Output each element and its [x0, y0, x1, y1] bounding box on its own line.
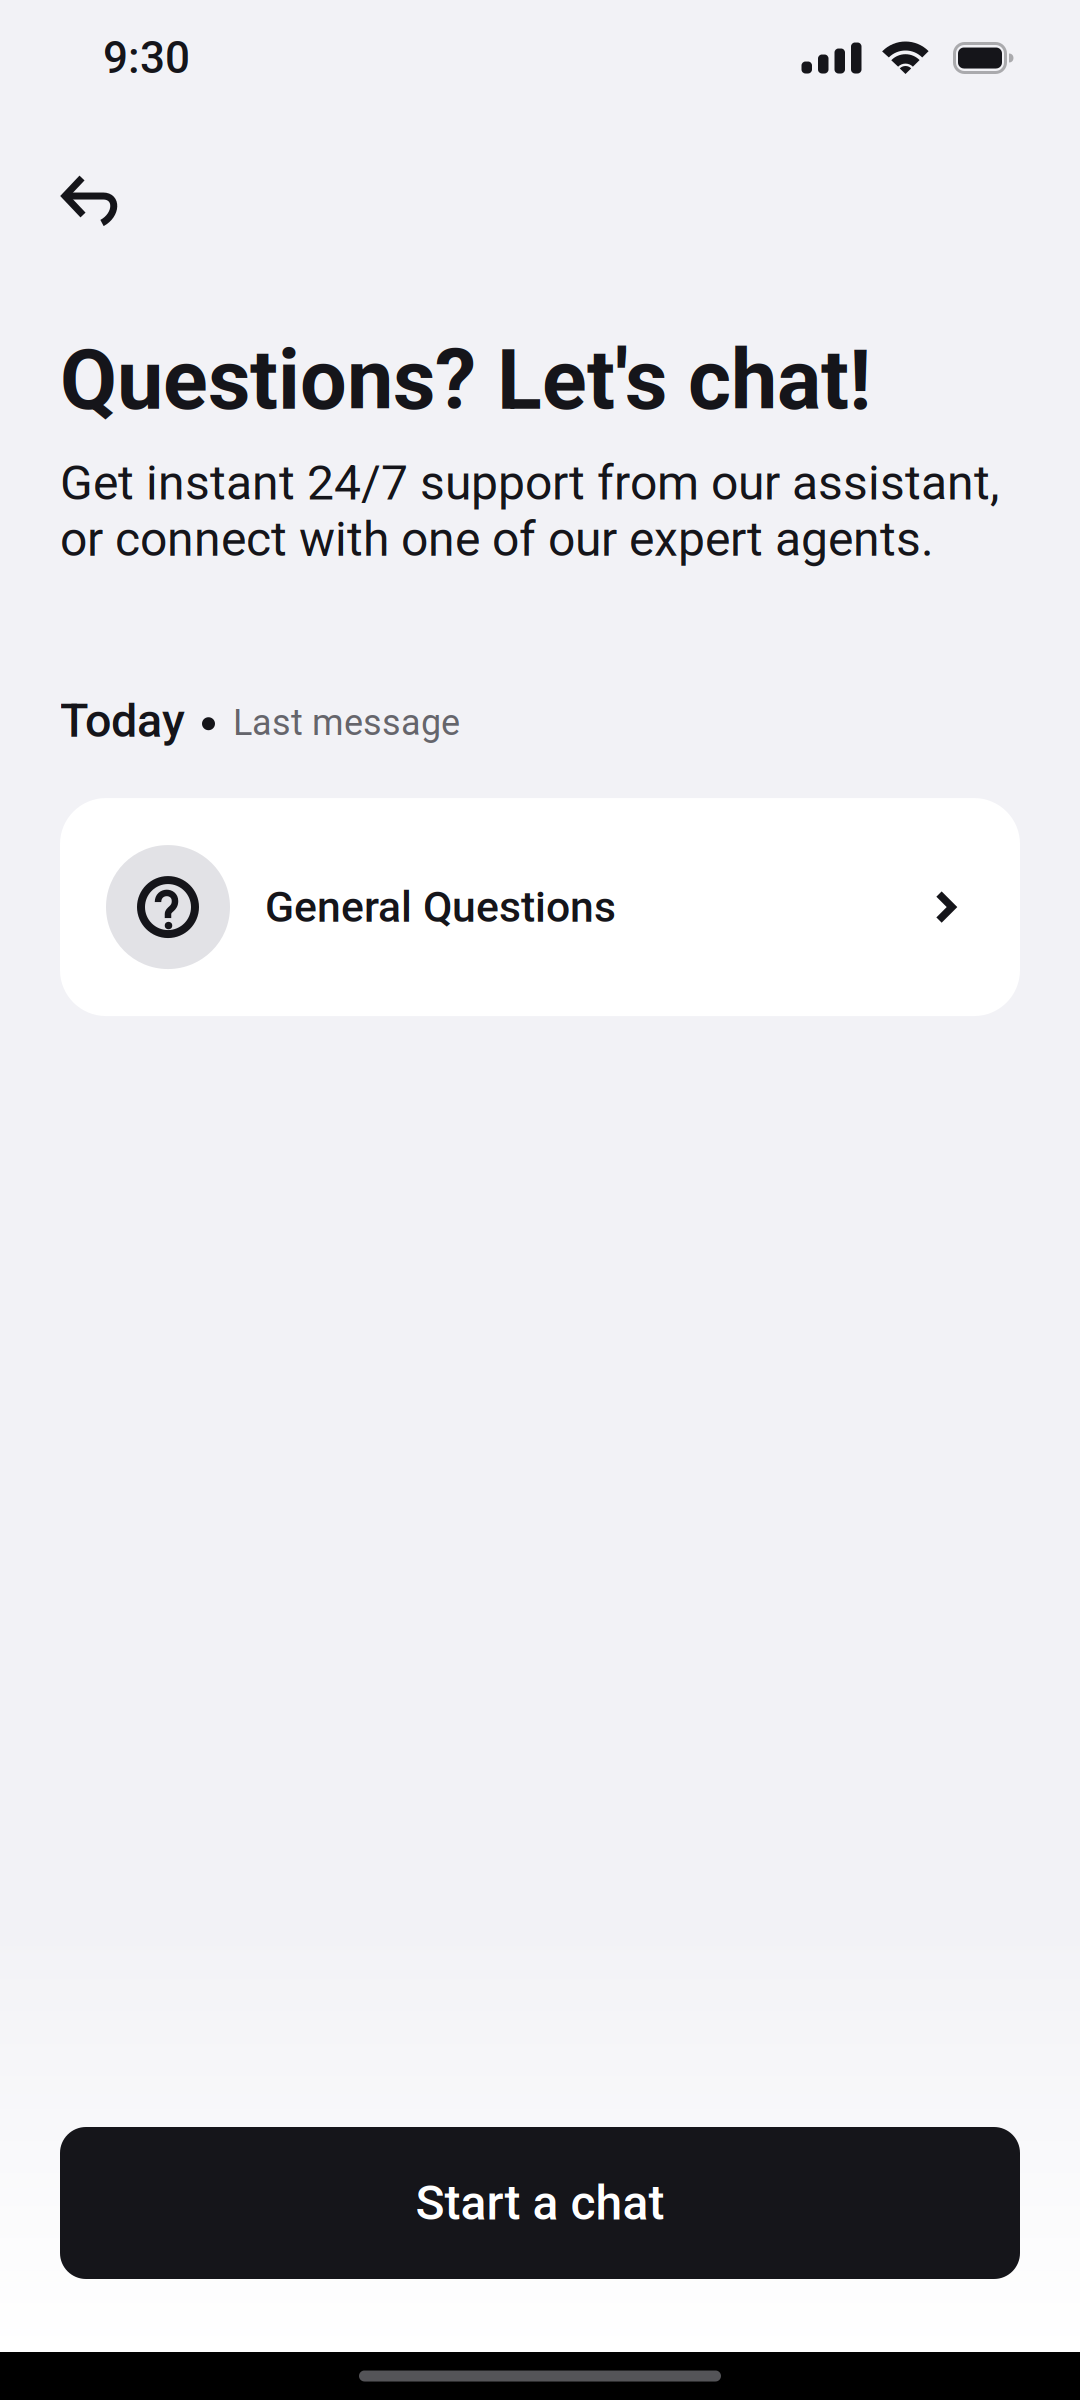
staticText: 9:30	[103, 32, 190, 84]
staticText: Last message	[233, 702, 460, 744]
staticText: Get instant 24/7 support from our assist…	[60, 455, 999, 567]
staticText: Questions? Let's chat!	[60, 332, 871, 429]
button[interactable]: General Questions	[60, 798, 1020, 1016]
button[interactable]: Start a chat	[60, 2127, 1020, 2279]
staticText: General Questions	[265, 882, 616, 932]
staticText: Today	[60, 693, 185, 748]
button[interactable]: Back	[0, 150, 161, 248]
staticText: Start a chat	[415, 2175, 664, 2231]
